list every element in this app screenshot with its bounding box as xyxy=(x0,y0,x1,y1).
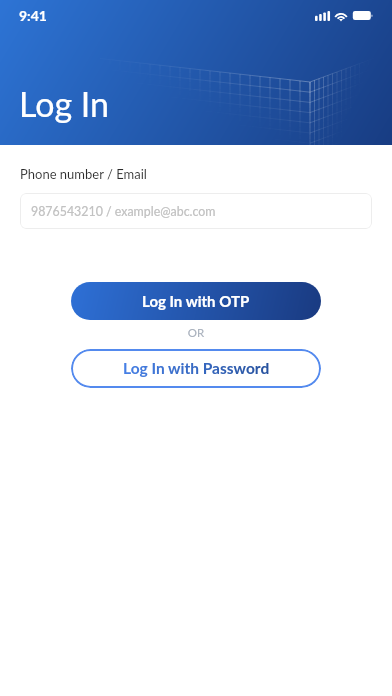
staticText: OR xyxy=(0,326,392,340)
staticText: Log In with Password xyxy=(123,359,270,378)
staticText: 9:41 xyxy=(19,7,47,24)
other: Signal, Wi-Fi and battery status xyxy=(315,10,373,21)
button[interactable]: Log In with OTP xyxy=(71,282,321,320)
button[interactable]: 9876543210 / example@abc.com xyxy=(20,193,372,229)
button[interactable]: Log In with Password xyxy=(71,349,321,388)
staticText: Phone number / Email xyxy=(20,166,147,182)
staticText: Log In with OTP xyxy=(142,292,250,310)
staticText: Log In xyxy=(19,83,110,124)
staticText: 9876543210 / example@abc.com xyxy=(31,204,216,219)
